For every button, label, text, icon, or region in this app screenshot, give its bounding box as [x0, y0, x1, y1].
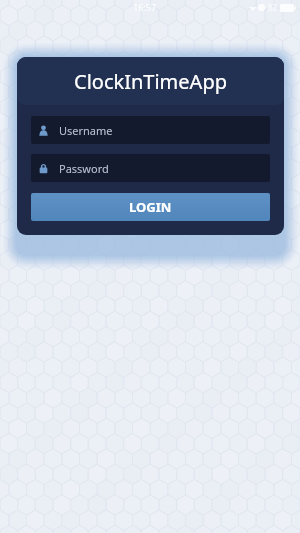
button[interactable]: Username [31, 116, 270, 144]
button[interactable]: Password [31, 154, 270, 182]
staticText: ClockInTimeApp [74, 68, 227, 95]
staticText: LOGIN [129, 198, 172, 216]
button[interactable]: LOGIN [31, 193, 270, 221]
staticText: Username [59, 123, 113, 138]
staticText: 82 [268, 2, 278, 13]
staticText: 16:57 [133, 1, 157, 13]
staticText: Password [59, 161, 109, 176]
